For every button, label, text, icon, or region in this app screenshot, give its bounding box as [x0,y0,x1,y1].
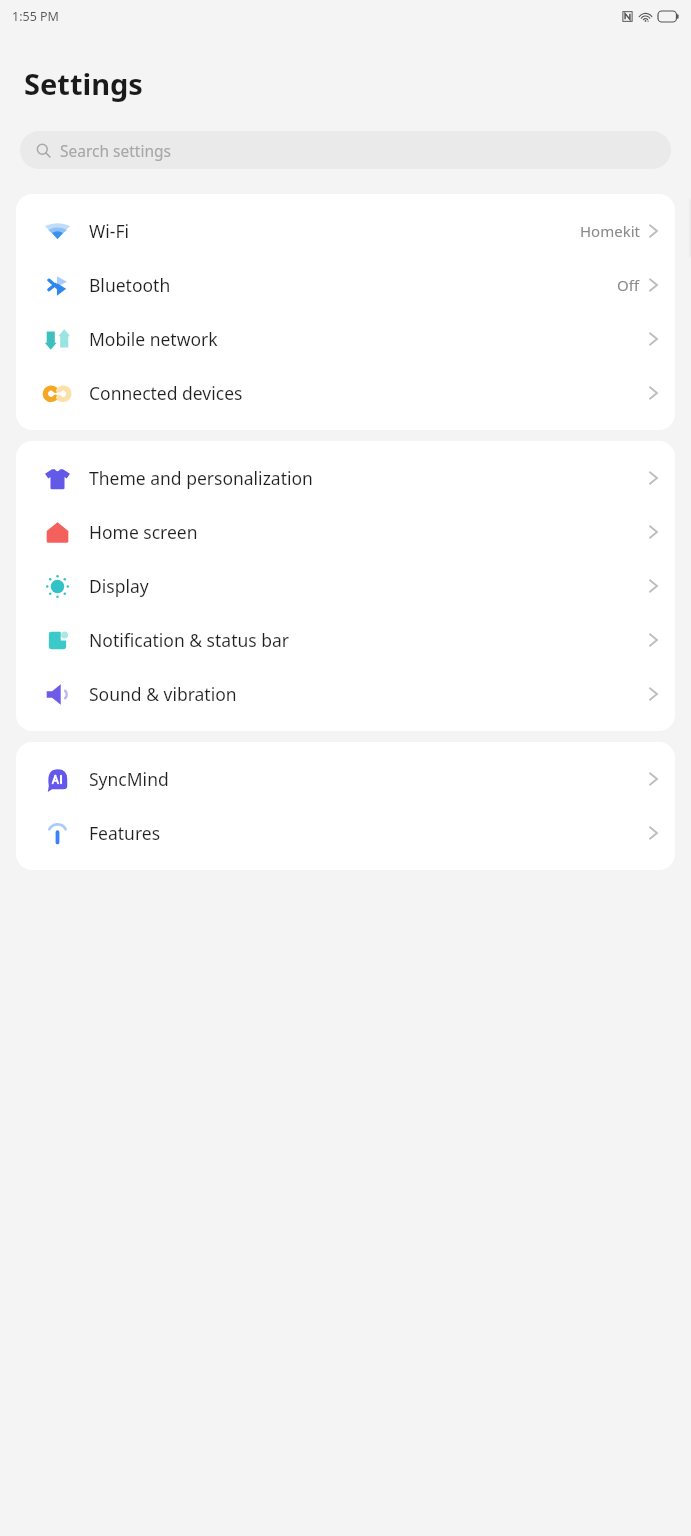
button[interactable]: Bluetooth [16,258,675,312]
staticText: Off [617,275,640,295]
staticText: Search settings [60,140,171,161]
button[interactable]: Theme and personalization [16,451,675,505]
staticText: Display [89,574,149,598]
staticText: SyncMind [89,767,169,791]
staticText: Features [89,821,161,845]
button[interactable]: Features [16,806,675,860]
staticText: Theme and personalization [89,466,313,490]
button[interactable]: Display [16,559,675,613]
staticText: Connected devices [89,381,243,405]
staticText: Notification & status bar [89,628,290,652]
button[interactable]: Wi-Fi [16,204,675,258]
staticText: 1:55 PM [12,8,59,25]
button[interactable]: Notification & status bar [16,613,675,667]
staticText: Sound & vibration [89,682,237,706]
button[interactable]: Connected devices [16,366,675,420]
button[interactable]: Mobile network [16,312,675,366]
button[interactable]: Home screen [16,505,675,559]
button[interactable]: SyncMind [16,752,675,806]
staticText: Wi-Fi [89,219,130,243]
staticText: Home screen [89,520,198,544]
staticText: Mobile network [89,327,218,351]
staticText: Bluetooth [89,273,171,297]
button[interactable]: Sound & vibration [16,667,675,721]
staticText: Settings [24,64,143,103]
button[interactable]: Search settings [20,131,671,169]
staticText: Homekit [580,221,640,241]
